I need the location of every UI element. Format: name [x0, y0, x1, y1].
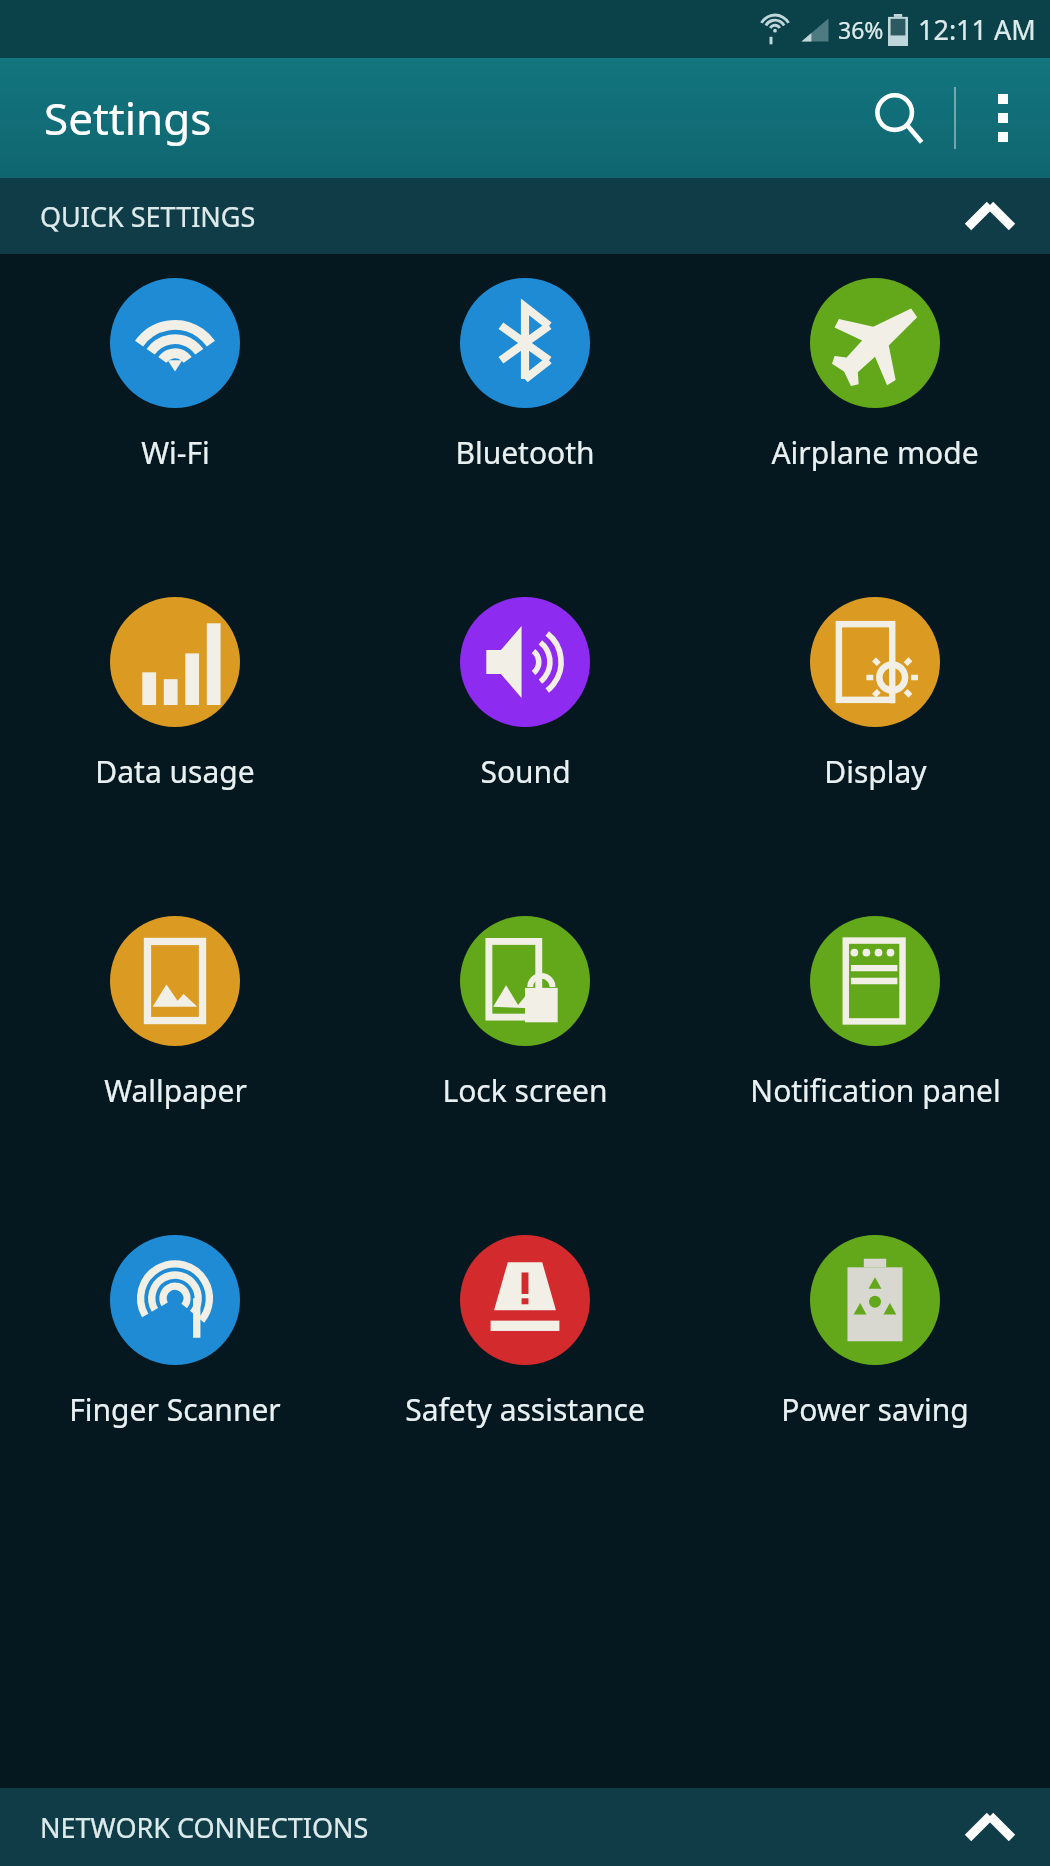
button[interactable]: QUICK SETTINGS	[0, 178, 1050, 254]
staticText: Sound	[480, 751, 571, 792]
staticText: NETWORK CONNECTIONS	[40, 1809, 369, 1846]
button[interactable]: Display	[700, 573, 1050, 892]
staticText: Display	[824, 751, 927, 792]
staticText: Safety assistance	[405, 1389, 645, 1430]
staticText: 36%	[838, 14, 884, 45]
button[interactable]: Lock screen	[350, 892, 700, 1211]
staticText: QUICK SETTINGS	[40, 198, 256, 235]
staticText: Lock screen	[442, 1070, 608, 1111]
staticText: Airplane mode	[771, 432, 979, 473]
button[interactable]: Power saving	[700, 1211, 1050, 1530]
staticText: Data usage	[95, 751, 255, 792]
button[interactable]: Sound	[350, 573, 700, 892]
button[interactable]: Wi-Fi	[0, 254, 350, 573]
button[interactable]: Search	[844, 63, 954, 173]
staticText: Finger Scanner	[69, 1389, 281, 1430]
button[interactable]: NETWORK CONNECTIONS	[0, 1788, 1050, 1866]
button[interactable]: Wallpaper	[0, 892, 350, 1211]
button[interactable]: Notification panel	[700, 892, 1050, 1211]
button[interactable]: Bluetooth	[350, 254, 700, 573]
staticText: Wi-Fi	[141, 432, 210, 473]
staticText: Settings	[44, 88, 212, 148]
button[interactable]: Airplane mode	[700, 254, 1050, 573]
staticText: Bluetooth	[455, 432, 595, 473]
button[interactable]: More options	[956, 71, 1050, 165]
staticText: Wallpaper	[104, 1070, 247, 1111]
staticText: Notification panel	[750, 1070, 1001, 1111]
button[interactable]: Finger Scanner	[0, 1211, 350, 1530]
staticText: 12:11 AM	[918, 11, 1036, 48]
button[interactable]: Data usage	[0, 573, 350, 892]
staticText: Power saving	[781, 1389, 969, 1430]
button[interactable]: Safety assistance	[350, 1211, 700, 1530]
